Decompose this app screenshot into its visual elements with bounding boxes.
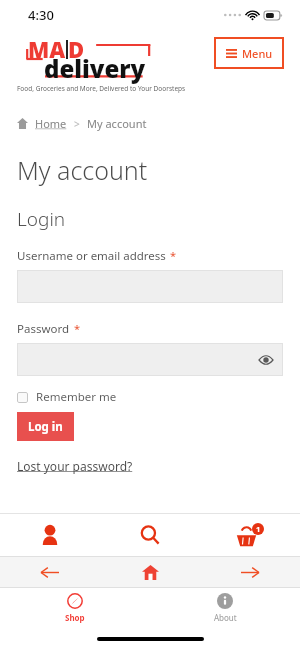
button[interactable]: Lost your password? [17,458,133,474]
staticText: MA [28,34,66,64]
button[interactable]: About [197,593,253,623]
button[interactable]: Search [100,514,200,556]
staticText: Menu [242,46,273,61]
staticText: About [214,612,237,623]
button[interactable]: Log in [17,412,74,441]
staticText: * [170,248,177,263]
button[interactable]: Show password [17,343,283,376]
staticText: D [68,34,85,64]
button[interactable]: Home [35,116,67,131]
staticText: Log in [28,419,63,435]
staticText: 4:30 [28,6,54,24]
staticText: My account [17,153,148,187]
staticText: * [74,321,81,336]
other: Show password [259,355,273,365]
button[interactable]: Home [100,556,200,588]
staticText: 1 [256,524,261,534]
staticText: delivery [44,52,146,85]
staticText: Remember me [36,389,117,405]
button[interactable]: Remember me [17,389,117,405]
staticText: Username or email address [17,248,166,264]
staticText: > [74,117,80,131]
button[interactable]: Forward [200,556,300,588]
button[interactable]: Shop [47,593,103,623]
button[interactable]: Back [0,556,100,588]
staticText: Shop [65,612,85,623]
staticText: My account [87,116,147,131]
button[interactable]: Account [0,514,100,556]
staticText: Login [17,206,66,232]
button[interactable]: Cart [200,514,300,556]
staticText: Food, Groceries and More, Delivered to Y… [17,84,186,93]
button[interactable] [17,270,283,303]
button[interactable]: Menu [214,37,284,69]
staticText: Password [17,321,70,337]
